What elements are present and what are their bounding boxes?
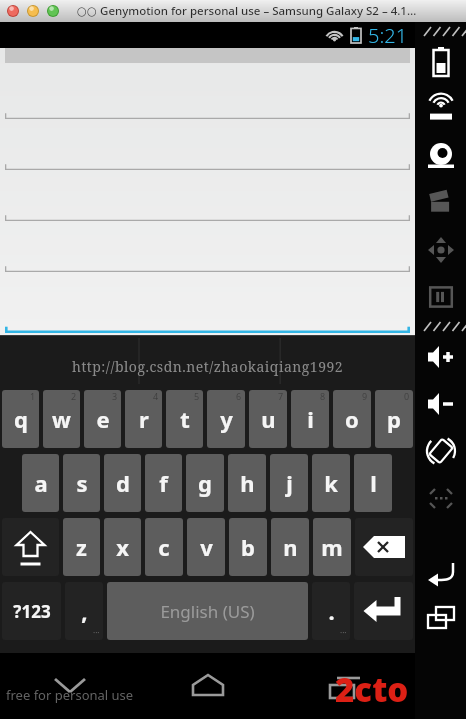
button[interactable]: n — [271, 518, 309, 576]
button[interactable]: v — [187, 518, 225, 576]
button[interactable]: Back — [0, 653, 139, 719]
button[interactable]: . — [312, 582, 350, 640]
staticText: u — [261, 404, 276, 434]
staticText: m — [321, 532, 343, 562]
staticText: ··· — [340, 627, 347, 638]
staticText: i — [307, 404, 314, 434]
button[interactable]: j — [270, 454, 308, 512]
button[interactable]: Battery — [415, 38, 466, 85]
staticText: ?123 — [13, 600, 51, 623]
staticText: 6 — [236, 390, 242, 402]
button[interactable]: b — [229, 518, 267, 576]
staticText: r — [139, 404, 149, 434]
staticText: d — [116, 468, 130, 498]
button[interactable]: c — [145, 518, 183, 576]
staticText: s — [76, 468, 88, 498]
staticText: t — [180, 404, 190, 434]
button[interactable]: s — [63, 454, 100, 512]
staticText: n — [283, 532, 298, 562]
button[interactable]: Zoom one to one — [415, 474, 466, 521]
staticText: . — [328, 596, 335, 626]
staticText: x — [116, 532, 129, 562]
button[interactable]: English (US) — [107, 582, 308, 640]
button[interactable]: , — [65, 582, 103, 640]
staticText: 2cto — [335, 667, 409, 712]
button[interactable]: Volume down — [415, 380, 466, 427]
staticText: 3 — [112, 390, 118, 402]
staticText: 5 — [194, 390, 200, 402]
staticText: 5:21 — [368, 22, 408, 48]
button[interactable]: Recent apps — [415, 594, 466, 641]
button[interactable]: Back — [415, 547, 466, 594]
staticText: ○○ Genymotion for personal use – Samsung… — [77, 3, 417, 19]
staticText: b — [241, 532, 255, 562]
button[interactable]: Shift — [2, 518, 59, 576]
button[interactable]: k — [312, 454, 350, 512]
button[interactable]: z — [63, 518, 100, 576]
button[interactable] — [5, 258, 410, 272]
staticText: o — [345, 404, 359, 434]
staticText: e — [96, 404, 110, 434]
button[interactable]: D-pad — [415, 226, 466, 273]
staticText: 4 — [153, 390, 159, 402]
staticText: z — [76, 532, 87, 562]
staticText: y — [220, 404, 233, 434]
staticText: 7 — [278, 390, 284, 402]
button[interactable]: a — [22, 454, 59, 512]
staticText: ··· — [93, 627, 100, 638]
staticText: q — [14, 404, 28, 434]
button[interactable]: r — [125, 390, 162, 448]
staticText: w — [52, 404, 71, 434]
button[interactable]: o — [333, 390, 371, 448]
staticText: , — [81, 596, 88, 626]
button[interactable] — [5, 156, 410, 170]
button[interactable]: h — [228, 454, 266, 512]
staticText: a — [34, 468, 48, 498]
button[interactable] — [5, 207, 410, 221]
button[interactable]: Camera — [415, 132, 466, 179]
staticText: 9 — [362, 390, 368, 402]
staticText: k — [324, 468, 338, 498]
button[interactable]: Volume up — [415, 333, 466, 380]
button[interactable] — [5, 105, 410, 119]
button[interactable]: Home — [139, 653, 277, 719]
button[interactable]: y — [207, 390, 245, 448]
button[interactable]: Enter — [354, 582, 413, 640]
staticText: f — [159, 468, 168, 498]
button[interactable]: t — [166, 390, 203, 448]
button[interactable]: d — [104, 454, 141, 512]
staticText: http://blog.csdn.net/zhaokaiqiang1992 — [72, 357, 344, 376]
button[interactable]: Delete — [355, 518, 413, 576]
button[interactable]: g — [186, 454, 224, 512]
staticText: 0 — [404, 390, 410, 402]
staticText: 2 — [71, 390, 77, 402]
staticText: l — [370, 468, 377, 498]
button[interactable]: p — [375, 390, 413, 448]
button[interactable]: x — [104, 518, 141, 576]
button[interactable]: q — [2, 390, 39, 448]
staticText: h — [240, 468, 255, 498]
button[interactable]: l — [354, 454, 392, 512]
staticText: 1 — [30, 390, 36, 402]
button[interactable]: Recent apps — [277, 653, 415, 719]
button[interactable] — [5, 319, 410, 333]
staticText: English (US) — [160, 600, 255, 623]
button[interactable]: i — [291, 390, 329, 448]
staticText: p — [387, 404, 401, 434]
staticText: g — [198, 468, 212, 498]
button[interactable]: f — [145, 454, 182, 512]
button[interactable]: ?123 — [2, 582, 61, 640]
button[interactable]: w — [43, 390, 80, 448]
button[interactable]: e — [84, 390, 121, 448]
button[interactable]: Video recording — [415, 179, 466, 226]
staticText: 8 — [320, 390, 326, 402]
button[interactable]: Rotate screen — [415, 427, 466, 474]
staticText: c — [158, 532, 170, 562]
button[interactable]: Identifiers — [415, 273, 466, 320]
staticText: v — [200, 532, 213, 562]
staticText: j — [286, 468, 293, 498]
button[interactable]: u — [249, 390, 287, 448]
button[interactable]: m — [313, 518, 351, 576]
button[interactable]: GPS — [415, 85, 466, 132]
staticText: free for personal use — [6, 686, 134, 704]
